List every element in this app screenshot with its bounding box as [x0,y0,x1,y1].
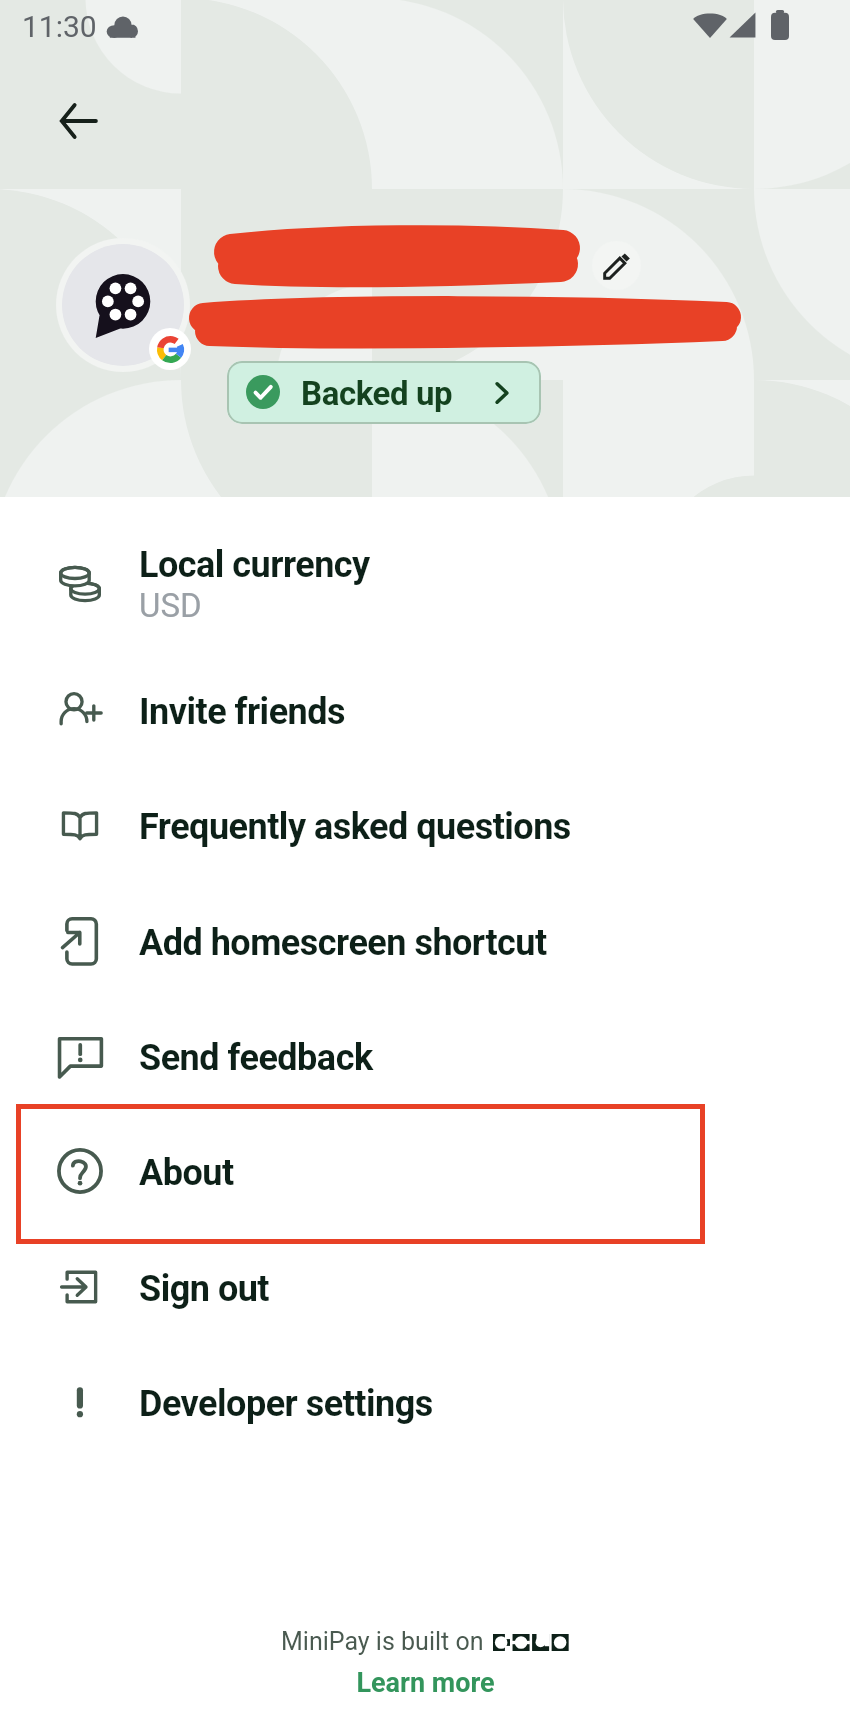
staticText: Backed up [301,374,453,413]
staticText: About [139,1152,234,1194]
staticText: Developer settings [139,1383,433,1425]
staticText: Local currency [139,544,370,586]
button[interactable]: Edit name [592,241,641,290]
staticText: MiniPay is built on [281,1627,484,1656]
button[interactable]: Back [51,93,107,149]
staticText: Sign out [139,1268,270,1310]
button[interactable]: Invite friends [0,672,850,776]
button[interactable]: About [0,1133,850,1237]
button[interactable]: Local currency [0,523,850,639]
button[interactable]: Profile photo [62,244,184,366]
button[interactable]: Sign out [0,1249,850,1353]
button[interactable]: Add homescreen shortcut [0,903,850,1007]
staticText: Learn more [356,1667,495,1699]
button[interactable]: Developer settings [0,1364,850,1468]
button[interactable]: Backed up [227,361,541,424]
staticText: Invite friends [139,691,346,733]
button[interactable]: Learn more [330,1662,520,1704]
button[interactable]: Send feedback [0,1018,850,1122]
staticText: Send feedback [139,1037,373,1079]
staticText: Add homescreen shortcut [139,922,547,964]
button[interactable]: Frequently asked questions [0,787,850,891]
staticText: Frequently asked questions [139,806,571,848]
staticText: USD [139,586,202,625]
staticText: 11:30 [22,9,97,44]
